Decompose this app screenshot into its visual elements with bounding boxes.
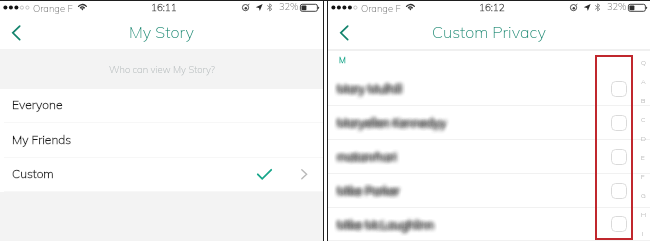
staticText: Mike McLaughlinn (336, 220, 433, 235)
staticText: G (641, 191, 646, 199)
staticText: Mike McLaughlinn (335, 219, 432, 234)
button[interactable]: Mike McLaughlinn (328, 208, 650, 241)
staticText: Maryellen Kennedyy (341, 118, 451, 133)
staticText: matanrhari (337, 152, 397, 167)
button[interactable]: Everyone (0, 89, 323, 123)
staticText: Mary Mulhill (337, 77, 403, 92)
staticText: Custom Privacy (432, 22, 546, 42)
staticText: Mary Mulhill (336, 84, 402, 99)
staticText: Mike McLaughlinn (337, 215, 434, 230)
staticText: Mary Mulhill (334, 78, 400, 93)
staticText: matanrhari (339, 150, 399, 165)
staticText: matanrhari (334, 153, 394, 168)
staticText: Maryellen Kennedyy (340, 119, 450, 134)
staticText: Maryellen Kennedyy (339, 115, 449, 130)
staticText: matanrhari (340, 151, 400, 166)
staticText: Mike McLaughlinn (335, 217, 432, 232)
staticText: Mike Parker (334, 181, 397, 196)
staticText: Mike McLaughlinn (336, 214, 433, 229)
staticText: Mike McLaughlinn (340, 221, 437, 236)
button[interactable]: My Friends (0, 123, 323, 158)
staticText: matanrhari (337, 151, 397, 166)
staticText: Maryellen Kennedyy (338, 116, 448, 131)
staticText: Maryellen Kennedyy (339, 116, 449, 131)
staticText: Mike Parker (341, 183, 404, 198)
staticText: Mary Mulhill (335, 83, 401, 98)
staticText: Mike McLaughlinn (339, 217, 436, 232)
button[interactable]: Mary Mulhill (328, 72, 650, 106)
staticText: Mike Parker (336, 185, 399, 200)
staticText: Mike Parker (337, 179, 400, 194)
staticText: Mike Parker (334, 184, 397, 199)
staticText: Mike Parker (339, 180, 402, 195)
button[interactable]: matanrhari (328, 140, 650, 174)
staticText: Maryellen Kennedyy (333, 114, 443, 129)
button[interactable]: Back (330, 17, 356, 47)
staticText: Maryellen Kennedyy (333, 113, 443, 128)
staticText: Mike McLaughlinn (341, 216, 438, 231)
staticText: Maryellen Kennedyy (334, 118, 444, 133)
staticText: Everyone (12, 97, 63, 112)
staticText: Maryellen Kennedyy (333, 115, 443, 130)
staticText: Mary Mulhill (339, 77, 405, 92)
staticText: matanrhari (339, 151, 399, 166)
button[interactable]: Maryellen Kennedyy (328, 106, 650, 140)
staticText: Mary Mulhill (340, 85, 406, 100)
button[interactable]: Custom (0, 158, 323, 192)
button[interactable]: Back (2, 17, 28, 47)
staticText: Mike Parker (334, 179, 397, 194)
staticText: Mary Mulhill (336, 78, 402, 93)
staticText: Mike Parker (336, 180, 399, 195)
staticText: Mike Parker (337, 182, 400, 197)
staticText: matanrhari (334, 150, 394, 165)
staticText: matanrhari (333, 150, 393, 165)
staticText: Maryellen Kennedyy (334, 117, 444, 132)
staticText: Maryellen Kennedyy (341, 113, 451, 128)
staticText: Maryellen Kennedyy (337, 114, 447, 129)
staticText: matanrhari (335, 146, 395, 161)
staticText: Mary Mulhill (340, 80, 406, 95)
button[interactable]: Mike Parker (328, 174, 650, 208)
staticText: Mary Mulhill (339, 84, 405, 99)
staticText: Mike Parker (333, 185, 396, 200)
staticText: matanrhari (340, 152, 400, 167)
staticText: Mike McLaughlinn (334, 216, 431, 231)
staticText: Maryellen Kennedyy (340, 114, 450, 129)
staticText: Mike McLaughlinn (339, 218, 436, 233)
staticText: Mike Parker (340, 183, 403, 198)
staticText: Mary Mulhill (335, 85, 401, 100)
staticText: matanrhari (341, 150, 401, 165)
staticText: matanrhari (340, 146, 400, 161)
staticText: Mary Mulhill (337, 79, 403, 94)
staticText: matanrhari (334, 147, 394, 162)
staticText: Maryellen Kennedyy (335, 114, 445, 129)
staticText: Maryellen Kennedyy (340, 117, 450, 132)
staticText: Mike Parker (334, 187, 397, 202)
staticText: Mike Parker (338, 182, 401, 197)
staticText: Mary Mulhill (335, 78, 401, 93)
staticText: Maryellen Kennedyy (337, 113, 447, 128)
staticText: Maryellen Kennedyy (336, 114, 446, 129)
staticText: Mike Parker (339, 182, 402, 197)
staticText: 32% (279, 1, 299, 13)
staticText: matanrhari (338, 149, 398, 164)
staticText: matanrhari (339, 153, 399, 168)
staticText: matanrhari (337, 149, 397, 164)
staticText: Maryellen Kennedyy (338, 111, 448, 126)
staticText: Mike McLaughlinn (334, 213, 431, 228)
staticText: Mike McLaughlinn (335, 215, 432, 230)
staticText: Mike Parker (335, 187, 398, 202)
staticText: Mike Parker (335, 185, 398, 200)
staticText: Mary Mulhill (337, 85, 403, 100)
staticText: Mary Mulhill (336, 77, 402, 92)
staticText: Maryellen Kennedyy (333, 117, 443, 132)
staticText: Mike McLaughlinn (335, 218, 432, 233)
staticText: Mike Parker (337, 183, 400, 198)
button[interactable]: Alphabet index (636, 52, 650, 241)
staticText: Maryellen Kennedyy (334, 111, 444, 126)
staticText: matanrhari (340, 148, 400, 163)
staticText: Mike Parker (337, 186, 400, 201)
staticText: Maryellen Kennedyy (337, 116, 447, 131)
staticText: Maryellen Kennedyy (334, 119, 444, 134)
staticText: Mike Parker (335, 180, 398, 195)
